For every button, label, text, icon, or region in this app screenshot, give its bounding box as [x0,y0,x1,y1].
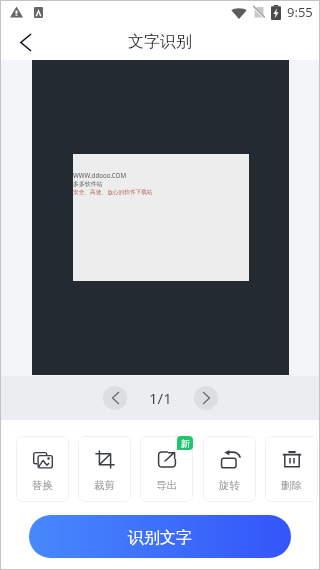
staticText: 多多软件站 [73,180,103,187]
staticText: 删除 [281,479,302,492]
button[interactable]: 删除 [265,436,318,502]
staticText: 安全、高速、放心的软件下载站 [73,189,153,196]
button[interactable]: 替换 [16,436,69,502]
button[interactable]: 识别文字 [29,515,291,558]
staticText: 导出 [156,479,177,492]
button[interactable]: Back [10,27,40,57]
button[interactable]: 旋转 [203,436,256,502]
staticText: 文字识别 [128,32,192,52]
staticText: 替换 [32,479,53,492]
staticText: 裁剪 [94,479,115,492]
staticText: WWW.ddooo.COM [73,171,127,179]
staticText: 旋转 [219,479,240,492]
button[interactable]: 裁剪 [78,436,131,502]
staticText: 识别文字 [128,528,192,548]
button[interactable]: Next page [194,386,218,410]
staticText: 9:55 [287,3,313,21]
button[interactable]: 导出 [140,436,193,502]
staticText: 新 [181,438,190,449]
button[interactable]: Previous page [103,386,127,410]
staticText: 1/1 [149,388,172,408]
